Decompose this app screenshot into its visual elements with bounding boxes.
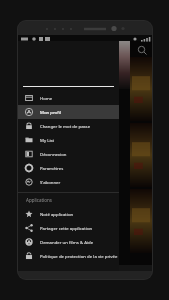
button[interactable]: Mon profil: [18, 105, 119, 119]
staticText: Changer le mot de passe: [40, 123, 91, 129]
other: Search: [137, 45, 147, 55]
staticText: Mon profil: [40, 109, 61, 115]
staticText: Politique de protection de la vie privée: [40, 253, 118, 259]
staticText: Partager cette application: [40, 225, 93, 231]
staticText: Déconnexion: [40, 151, 67, 157]
button[interactable]: S'abonner: [18, 175, 119, 189]
staticText: Applications: [26, 197, 52, 203]
button[interactable]: Politique de protection de la vie privée: [18, 249, 119, 263]
button[interactable]: Demander un films & Aide: [18, 235, 119, 249]
staticText: S'abonner: [40, 179, 61, 185]
button[interactable]: Partager cette application: [18, 221, 119, 235]
button[interactable]: My List: [18, 133, 119, 147]
staticText: Home: [40, 95, 53, 101]
button[interactable]: Paramètres: [18, 161, 119, 175]
button[interactable]: Home: [18, 91, 119, 105]
staticText: Noté application: [40, 211, 74, 217]
staticText: Demander un films & Aide: [40, 239, 94, 245]
staticText: Paramètres: [40, 165, 64, 171]
button[interactable]: Déconnexion: [18, 147, 119, 161]
button[interactable]: Noté application: [18, 207, 119, 221]
button[interactable]: Changer le mot de passe: [18, 119, 119, 133]
staticText: My List: [40, 137, 55, 143]
